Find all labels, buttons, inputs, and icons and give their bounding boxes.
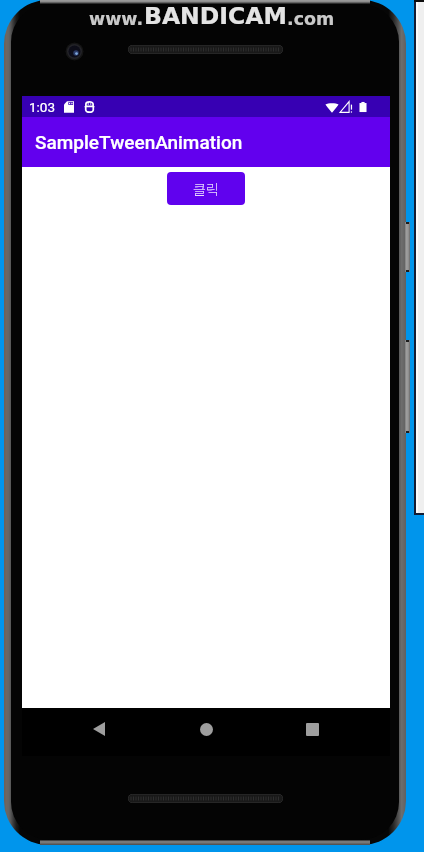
staticText: BANDICAM <box>144 2 287 29</box>
staticText: .com <box>287 9 335 29</box>
button[interactable]: 클릭 <box>167 172 245 205</box>
staticText: 클릭 <box>193 179 219 199</box>
staticText: 1:03 <box>29 99 56 115</box>
button[interactable]: Recent apps <box>275 708 349 750</box>
staticText: www. <box>89 9 144 29</box>
button[interactable]: Home <box>169 708 243 750</box>
button[interactable]: Back <box>62 708 136 750</box>
staticText: SampleTweenAnimation <box>35 131 243 153</box>
